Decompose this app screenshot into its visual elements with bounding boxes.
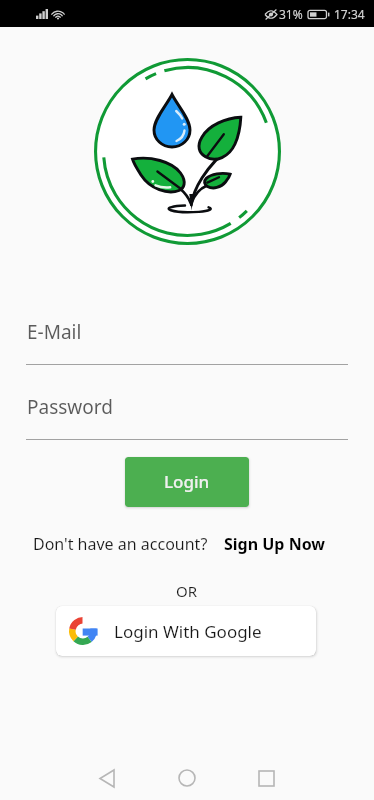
button[interactable]: Password [27,394,348,439]
staticText: Login [164,470,210,493]
button[interactable]: E-Mail [27,319,348,364]
staticText: Sign Up Now [224,533,326,555]
button[interactable]: Back [83,754,131,800]
staticText: 17:34 [334,6,365,22]
staticText: OR [176,581,198,601]
button[interactable]: Login With Google [56,606,316,656]
staticText: Password [27,394,113,420]
button[interactable]: Login [125,457,249,507]
staticText: Don't have an account? [33,533,208,555]
staticText: Login With Google [114,620,262,643]
button[interactable]: Recents [242,754,290,800]
staticText: E-Mail [27,319,82,345]
button[interactable]: Home [163,754,211,800]
staticText: 31% [279,6,303,22]
button[interactable]: Sign Up Now [224,533,326,555]
